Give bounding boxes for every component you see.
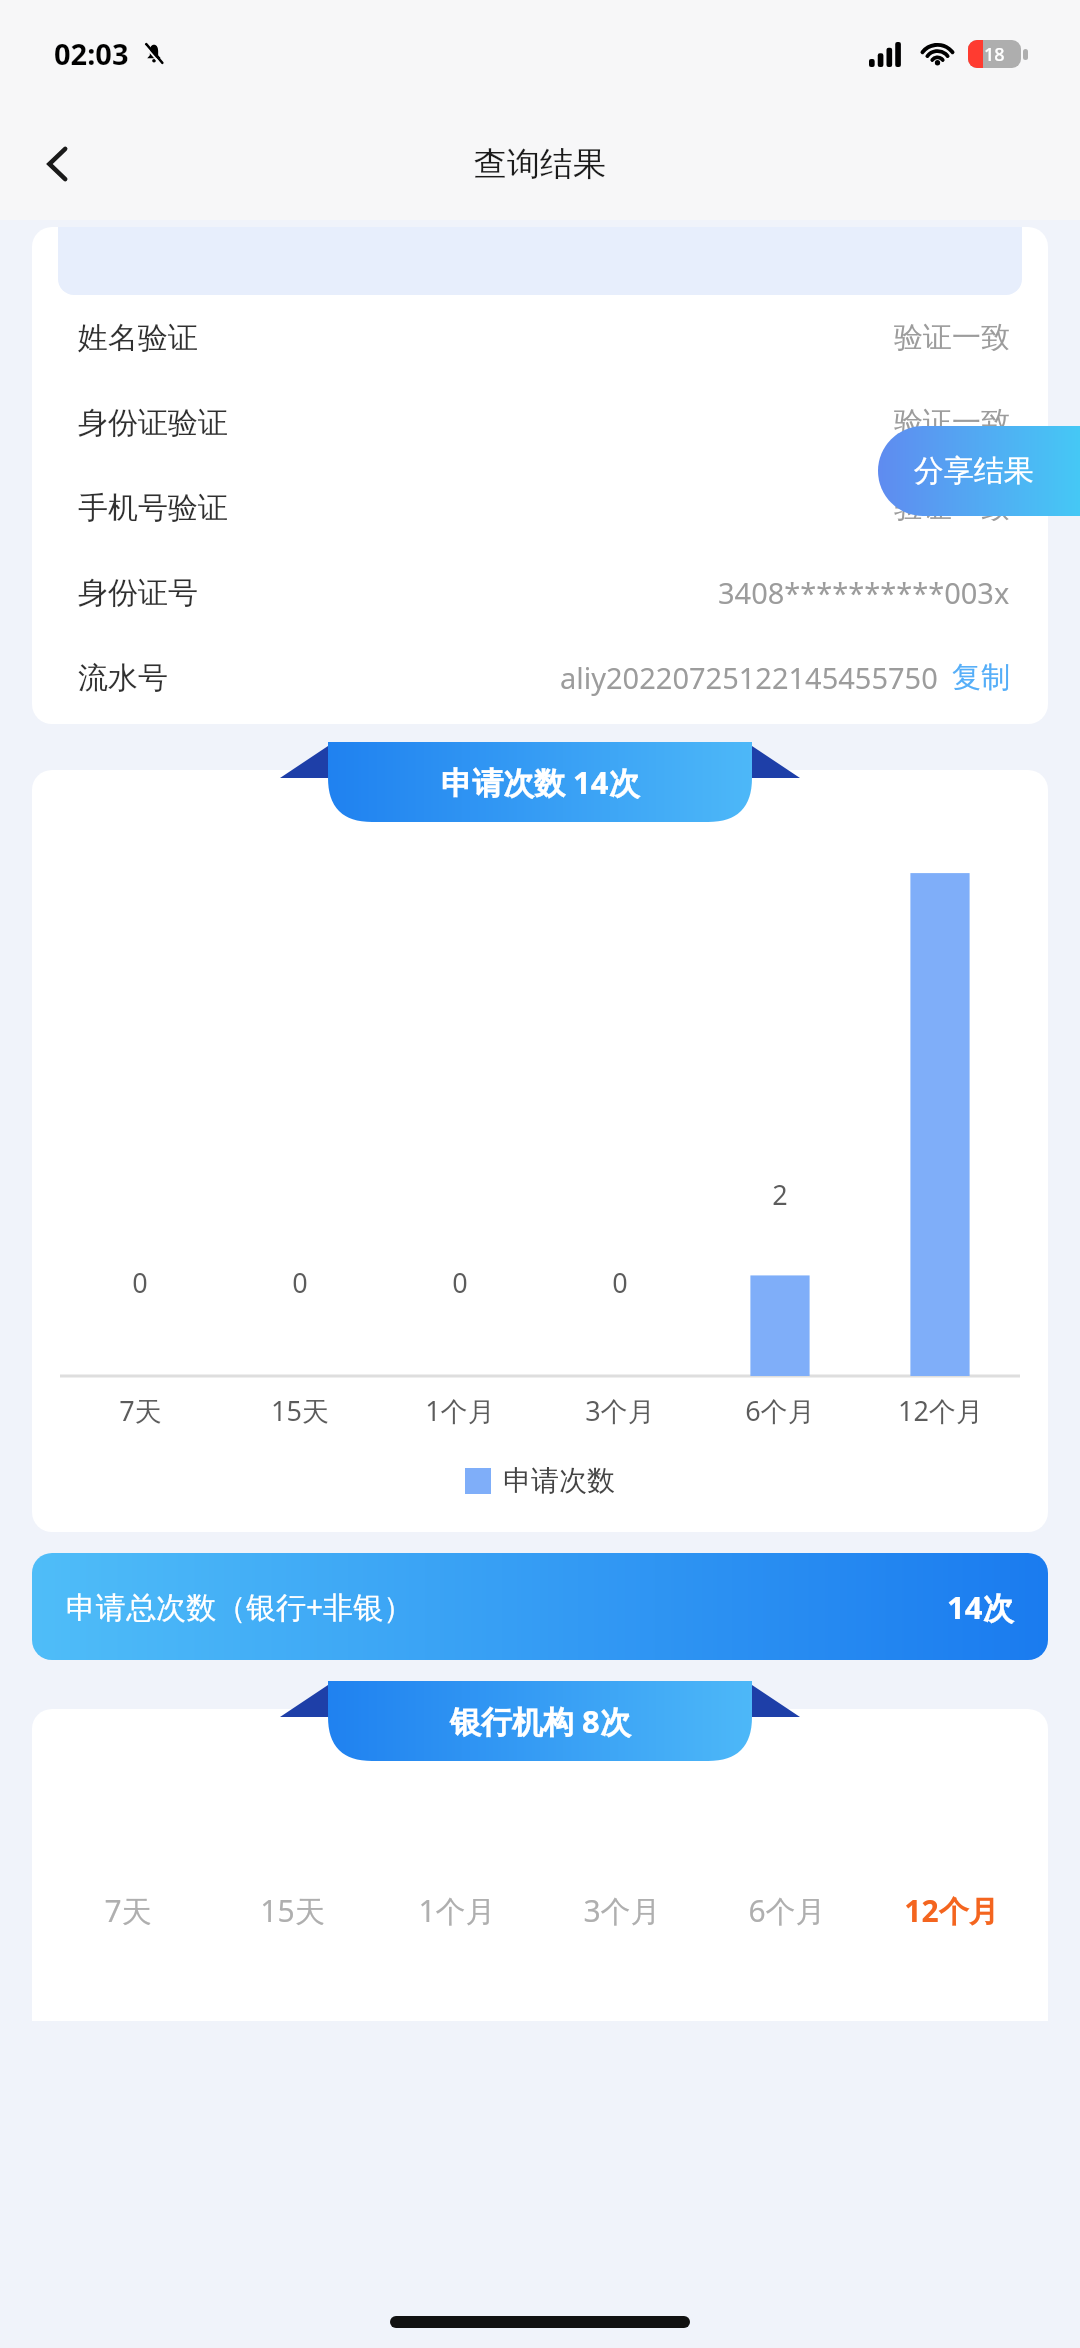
button[interactable]: 姓名验证 — [78, 295, 1010, 380]
staticText: 1个月 — [418, 1890, 496, 1931]
staticText: 流水号 — [78, 659, 168, 697]
staticText: 6个月 — [745, 1392, 815, 1429]
button[interactable]: 流水号 — [78, 635, 1010, 720]
staticText: 银行机构 8次 — [450, 1700, 631, 1742]
staticText: 验证一致 — [894, 489, 1010, 526]
button[interactable]: 6个月 — [704, 1875, 869, 1945]
staticText: 18 — [984, 42, 1005, 67]
button[interactable]: 15天 — [210, 1875, 374, 1945]
staticText: 分享结果 — [914, 452, 1034, 490]
button[interactable]: 1个月 — [374, 1875, 539, 1945]
staticText: 姓名验证 — [78, 319, 198, 357]
staticText: 2 — [772, 1176, 788, 1213]
staticText: 0 — [132, 1264, 148, 1301]
staticText: 12个月 — [898, 1392, 983, 1429]
button[interactable]: 12个月 — [869, 1875, 1034, 1945]
button[interactable]: 7天 — [46, 1875, 210, 1945]
staticText: 7天 — [119, 1392, 162, 1429]
staticText: 0 — [612, 1264, 628, 1301]
button[interactable]: Back — [26, 132, 90, 196]
staticText: 15天 — [271, 1392, 329, 1429]
staticText: 验证一致 — [894, 404, 1010, 441]
staticText: 手机号验证 — [78, 489, 228, 527]
button[interactable]: 分享结果 — [878, 426, 1080, 516]
staticText: 0 — [292, 1264, 308, 1301]
staticText: 身份证验证 — [78, 404, 228, 442]
staticText: 14次 — [947, 1586, 1014, 1628]
staticText: 6个月 — [748, 1890, 826, 1931]
button[interactable]: 手机号验证 — [78, 465, 1010, 550]
staticText: 3408**********003x — [718, 573, 1010, 612]
staticText: 12个月 — [904, 1890, 999, 1931]
button[interactable]: 身份证验证 — [78, 380, 1010, 465]
staticText: 1个月 — [425, 1392, 495, 1429]
staticText: 02:03 — [54, 34, 129, 73]
staticText: 申请总次数（银行+非银） — [66, 1586, 414, 1627]
staticText: 身份证号 — [78, 574, 198, 612]
staticText: 查询结果 — [474, 143, 606, 185]
staticText: 申请次数 — [503, 1463, 615, 1498]
staticText: 复制 — [952, 659, 1010, 696]
staticText: 7天 — [104, 1890, 152, 1931]
staticText: 0 — [452, 1264, 468, 1301]
button[interactable]: 3个月 — [539, 1875, 704, 1945]
staticText: 申请次数 14次 — [441, 761, 640, 803]
staticText: 15天 — [260, 1890, 325, 1931]
staticText: 3个月 — [583, 1890, 661, 1931]
button[interactable]: 身份证号 — [78, 550, 1010, 635]
staticText: aliy20220725122145455750 — [560, 658, 938, 697]
staticText: 验证一致 — [894, 319, 1010, 356]
staticText: 3个月 — [585, 1392, 655, 1429]
button[interactable]: 申请总次数（银行+非银） — [32, 1553, 1048, 1660]
